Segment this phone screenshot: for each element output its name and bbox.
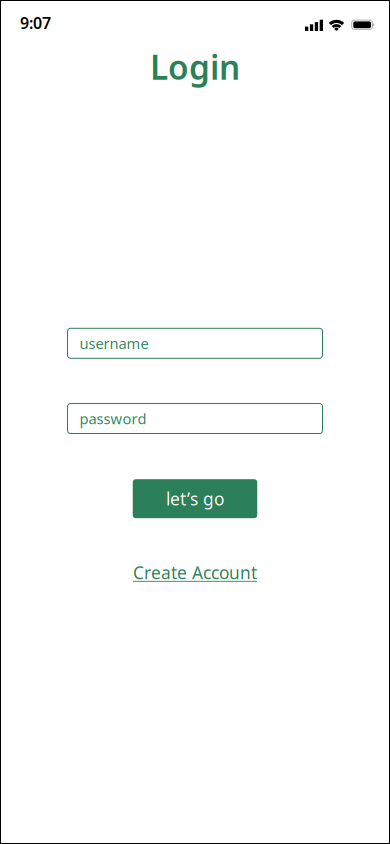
staticText: 9:07 <box>20 12 51 33</box>
button[interactable]: username <box>67 328 322 358</box>
staticText: let’s go <box>166 487 224 510</box>
staticText: Create Account <box>133 561 257 584</box>
staticText: password <box>79 409 146 428</box>
staticText: Login <box>150 45 240 89</box>
button[interactable]: password <box>67 403 322 433</box>
staticText: username <box>79 334 148 353</box>
button[interactable]: Create Account <box>133 561 257 584</box>
button[interactable]: let’s go <box>133 479 257 518</box>
